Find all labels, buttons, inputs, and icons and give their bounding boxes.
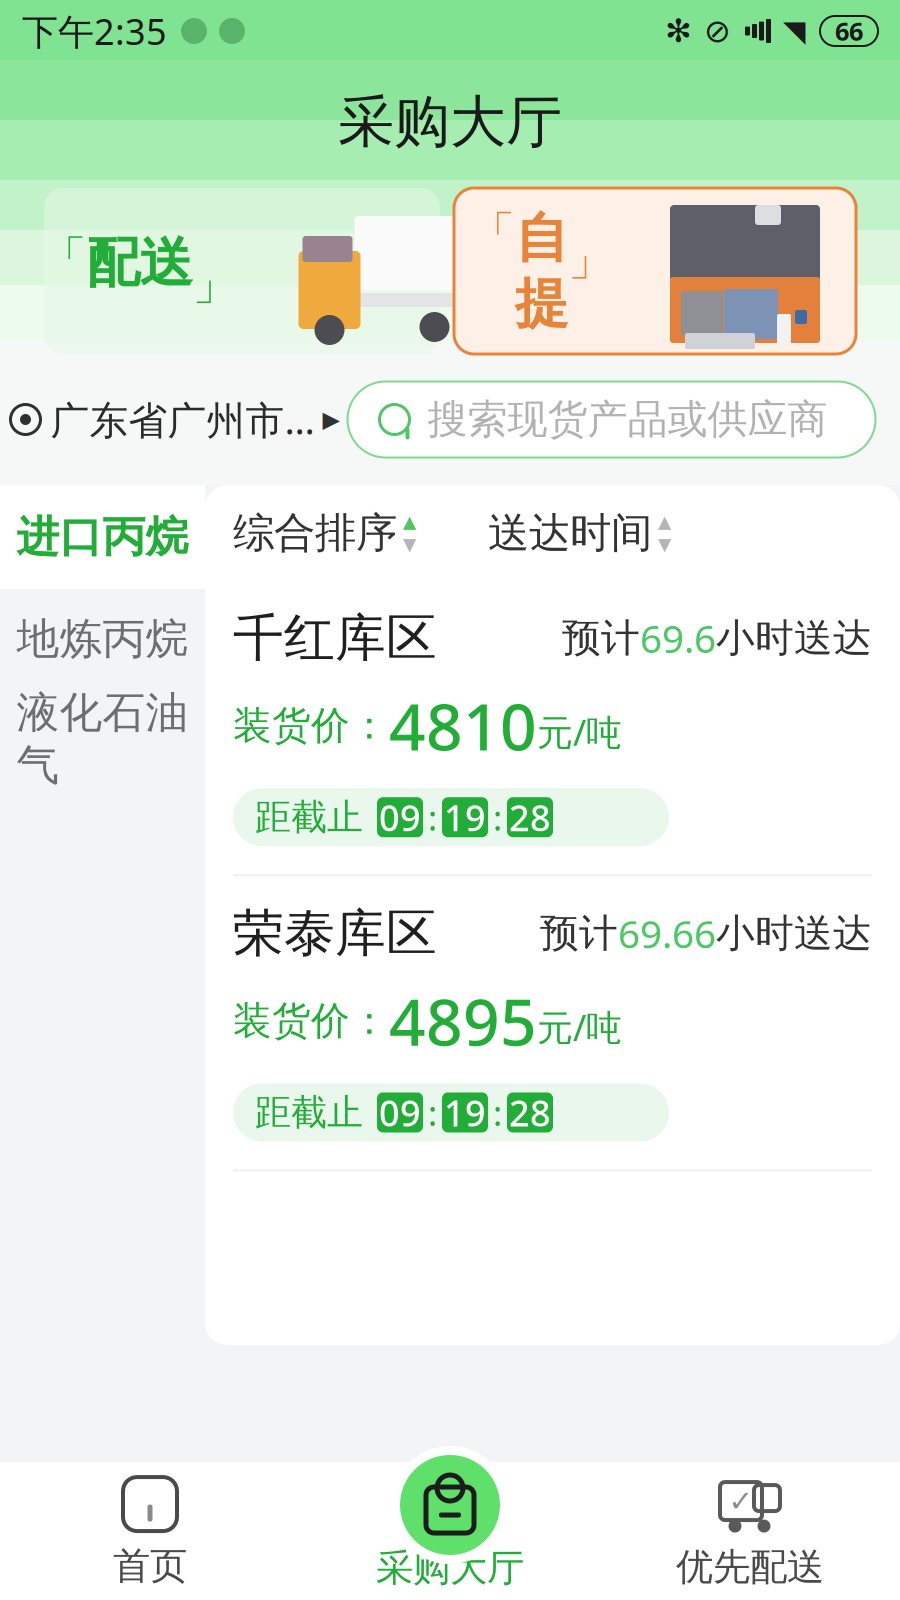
staticText: 66 (835, 14, 863, 48)
staticText: 装货价： (233, 702, 389, 749)
staticText: 搜索现货产品或供应商 (427, 395, 827, 444)
button[interactable]: 「 (44, 188, 440, 354)
staticText: 预计 (540, 910, 618, 957)
button[interactable]: 送达时间 (416, 494, 671, 572)
staticText: ⊘ (704, 13, 731, 49)
staticText: 」 (192, 256, 237, 312)
staticText: ✻ (665, 13, 692, 49)
staticText: ▶ (322, 407, 339, 432)
staticText: ▲ (658, 512, 671, 531)
staticText: 4895 (389, 978, 537, 1063)
button[interactable]: ✓ (600, 1462, 900, 1600)
staticText: 小时送达 (716, 614, 872, 662)
staticText: 距截止 (255, 795, 363, 839)
staticText: 自提 (515, 205, 568, 336)
staticText: ▼ (658, 534, 671, 554)
staticText: 09 (379, 1088, 421, 1136)
staticText: 下午2:35 (22, 7, 167, 55)
staticText: 距截止 (255, 1090, 363, 1134)
staticText: 「 (41, 230, 86, 286)
button[interactable]: 千红库区 (205, 581, 900, 876)
staticText: 配送 (86, 230, 192, 296)
staticText: 「 (470, 205, 515, 261)
staticText: 液化石油气 (16, 687, 188, 791)
button[interactable]: 广东省广州市... (0, 394, 339, 445)
staticText: 采购大厅 (338, 88, 562, 156)
staticText: 19 (444, 793, 486, 841)
staticText: ✓ (728, 1484, 753, 1518)
staticText: 采购大厅 (376, 1545, 524, 1591)
button[interactable]: 采购大厅 (300, 1462, 600, 1600)
button[interactable]: 进口丙烷 (0, 485, 205, 589)
button[interactable]: 地炼丙烷 (0, 589, 205, 689)
staticText: 千红库区 (233, 607, 437, 669)
staticText: : (493, 1089, 502, 1135)
staticText: ◥ (783, 14, 806, 48)
staticText: 69.6 (640, 612, 716, 664)
staticText: 预计 (562, 614, 640, 662)
staticText: 19 (444, 1088, 486, 1136)
staticText: 09 (379, 793, 421, 841)
button[interactable]: 首页 (0, 1462, 300, 1600)
staticText: ▲ (403, 512, 416, 531)
staticText: 首页 (113, 1543, 187, 1589)
staticText: 28 (509, 1088, 551, 1136)
staticText: 广东省广州市... (50, 394, 314, 445)
button[interactable]: 「 (454, 188, 856, 354)
staticText: 进口丙烷 (16, 511, 188, 563)
staticText: 荣泰库区 (233, 902, 437, 964)
staticText: 4810 (389, 683, 537, 768)
button[interactable]: 液化石油气 (0, 689, 205, 789)
staticText: 69.66 (618, 908, 716, 959)
button[interactable]: 荣泰库区 (205, 876, 900, 1171)
staticText: 优先配送 (676, 1544, 824, 1590)
staticText: : (428, 1089, 437, 1135)
button[interactable]: 综合排序 (205, 494, 416, 572)
staticText: : (493, 794, 502, 840)
staticText: 元/吨 (537, 708, 622, 756)
staticText: : (428, 794, 437, 840)
staticText: ▼ (403, 534, 416, 554)
button[interactable]: 搜索现货产品或供应商 (347, 381, 875, 457)
staticText: 」 (568, 231, 613, 287)
staticText: 综合排序 (233, 508, 397, 558)
staticText: 28 (509, 793, 551, 841)
staticText: 元/吨 (537, 1003, 622, 1051)
staticText: 装货价： (233, 997, 389, 1045)
staticText: 小时送达 (716, 910, 872, 957)
staticText: 送达时间 (488, 508, 652, 558)
staticText: 地炼丙烷 (16, 613, 188, 665)
